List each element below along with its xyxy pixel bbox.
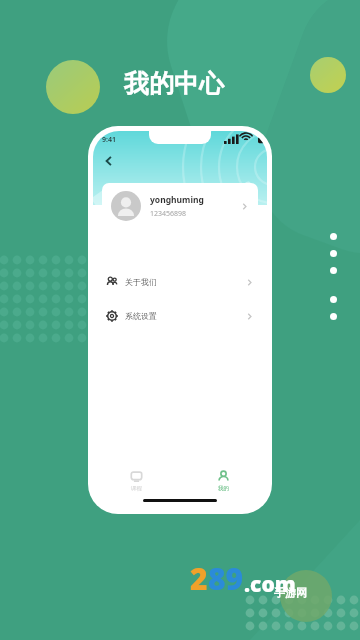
button[interactable]: Back — [99, 151, 119, 171]
button[interactable]: yonghuming — [102, 183, 258, 229]
staticText: 9:41 — [102, 135, 116, 145]
button[interactable]: 我的 — [209, 469, 238, 493]
staticText: 2 — [190, 558, 208, 599]
staticText: 关于我们 — [125, 277, 157, 287]
staticText: 我的中心 — [124, 68, 224, 99]
staticText: 课程 — [131, 485, 142, 492]
staticText: .com — [244, 570, 296, 599]
button[interactable]: 系统设置 — [93, 305, 267, 327]
button[interactable]: 课程 — [122, 469, 151, 493]
staticText: yonghuming — [150, 194, 204, 206]
staticText: 89 — [208, 558, 244, 599]
staticText: 我的 — [218, 485, 229, 492]
staticText: 123456898 — [150, 209, 187, 219]
button[interactable]: 关于我们 — [93, 271, 267, 293]
staticText: 系统设置 — [125, 311, 157, 321]
staticText: 手游网 — [274, 586, 307, 600]
